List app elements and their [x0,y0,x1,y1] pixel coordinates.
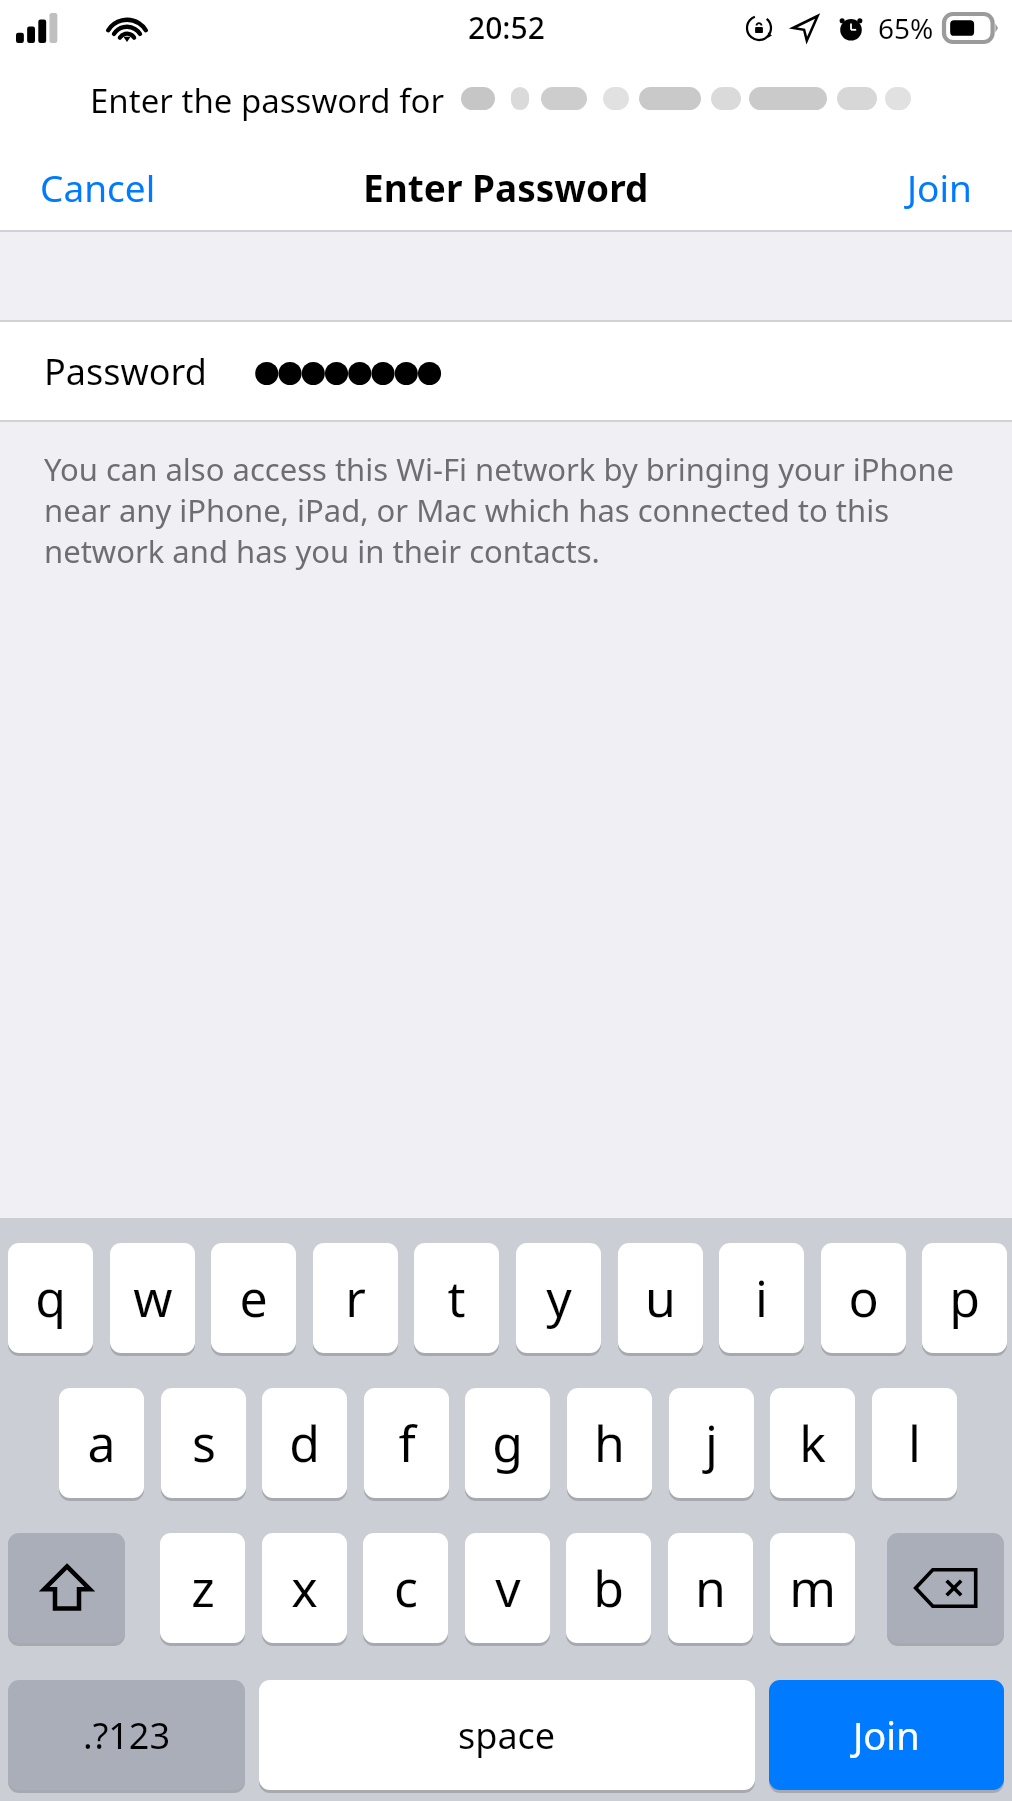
button[interactable]: y [516,1243,601,1353]
button[interactable]: v [465,1533,550,1643]
staticText: i [755,1264,768,1332]
staticText: x [291,1554,318,1622]
button[interactable]: b [566,1533,651,1643]
staticText: 20:52 [468,7,545,48]
staticText: f [398,1409,416,1477]
button[interactable]: Password [0,322,1012,420]
button[interactable]: f [364,1388,449,1498]
staticText: a [87,1409,116,1477]
staticText: u [645,1264,676,1332]
staticText: Join [907,162,972,212]
staticText: n [695,1554,726,1622]
staticText: s [192,1409,216,1477]
button[interactable]: .?123 [8,1680,245,1790]
staticText: Cancel [40,162,156,212]
staticText: Join [853,1709,920,1761]
staticText: c [394,1554,418,1622]
button[interactable]: g [465,1388,550,1498]
button[interactable]: c [363,1533,448,1643]
button[interactable]: space [259,1680,755,1790]
staticText: j [705,1409,718,1477]
staticText: v [495,1554,521,1622]
button[interactable]: e [211,1243,296,1353]
staticText: space [458,1711,556,1760]
staticText: 65% [878,9,934,47]
button[interactable]: x [262,1533,347,1643]
staticText: h [594,1409,625,1477]
staticText: k [799,1409,826,1477]
staticText: y [546,1264,572,1332]
button[interactable]: i [719,1243,804,1353]
button[interactable]: l [872,1388,957,1498]
button[interactable]: Backspace [887,1533,1004,1643]
button[interactable]: d [262,1388,347,1498]
staticText: p [949,1264,980,1332]
button[interactable]: Shift [8,1533,125,1643]
button[interactable]: u [618,1243,703,1353]
staticText: Enter the password for [90,78,453,123]
button[interactable]: Cancel [0,146,196,228]
button[interactable]: t [414,1243,499,1353]
button[interactable]: r [313,1243,398,1353]
button[interactable]: Join [867,146,1012,228]
button[interactable]: j [669,1388,754,1498]
staticText: t [447,1264,466,1332]
staticText: m [789,1554,836,1622]
staticText: d [289,1409,320,1477]
button[interactable]: w [110,1243,195,1353]
staticText: .?123 [83,1711,171,1760]
staticText: Enter Password [363,162,649,212]
staticText: w [133,1264,173,1332]
button[interactable]: a [59,1388,144,1498]
staticText: Password [44,347,207,396]
staticText: You can also access this Wi-Fi network b… [44,448,968,572]
button[interactable]: z [160,1533,245,1643]
button[interactable]: Join [769,1680,1004,1790]
button[interactable]: p [922,1243,1007,1353]
button[interactable]: o [821,1243,906,1353]
button[interactable]: h [567,1388,652,1498]
button[interactable]: m [770,1533,855,1643]
button[interactable]: n [668,1533,753,1643]
staticText: o [848,1264,879,1332]
button[interactable]: s [161,1388,246,1498]
staticText: e [239,1264,268,1332]
button[interactable]: k [770,1388,855,1498]
staticText: r [345,1264,366,1332]
button[interactable]: q [8,1243,93,1353]
staticText: b [593,1554,624,1622]
staticText: g [492,1409,523,1477]
staticText: z [191,1554,215,1622]
staticText: q [35,1264,66,1332]
staticText: l [908,1409,921,1477]
